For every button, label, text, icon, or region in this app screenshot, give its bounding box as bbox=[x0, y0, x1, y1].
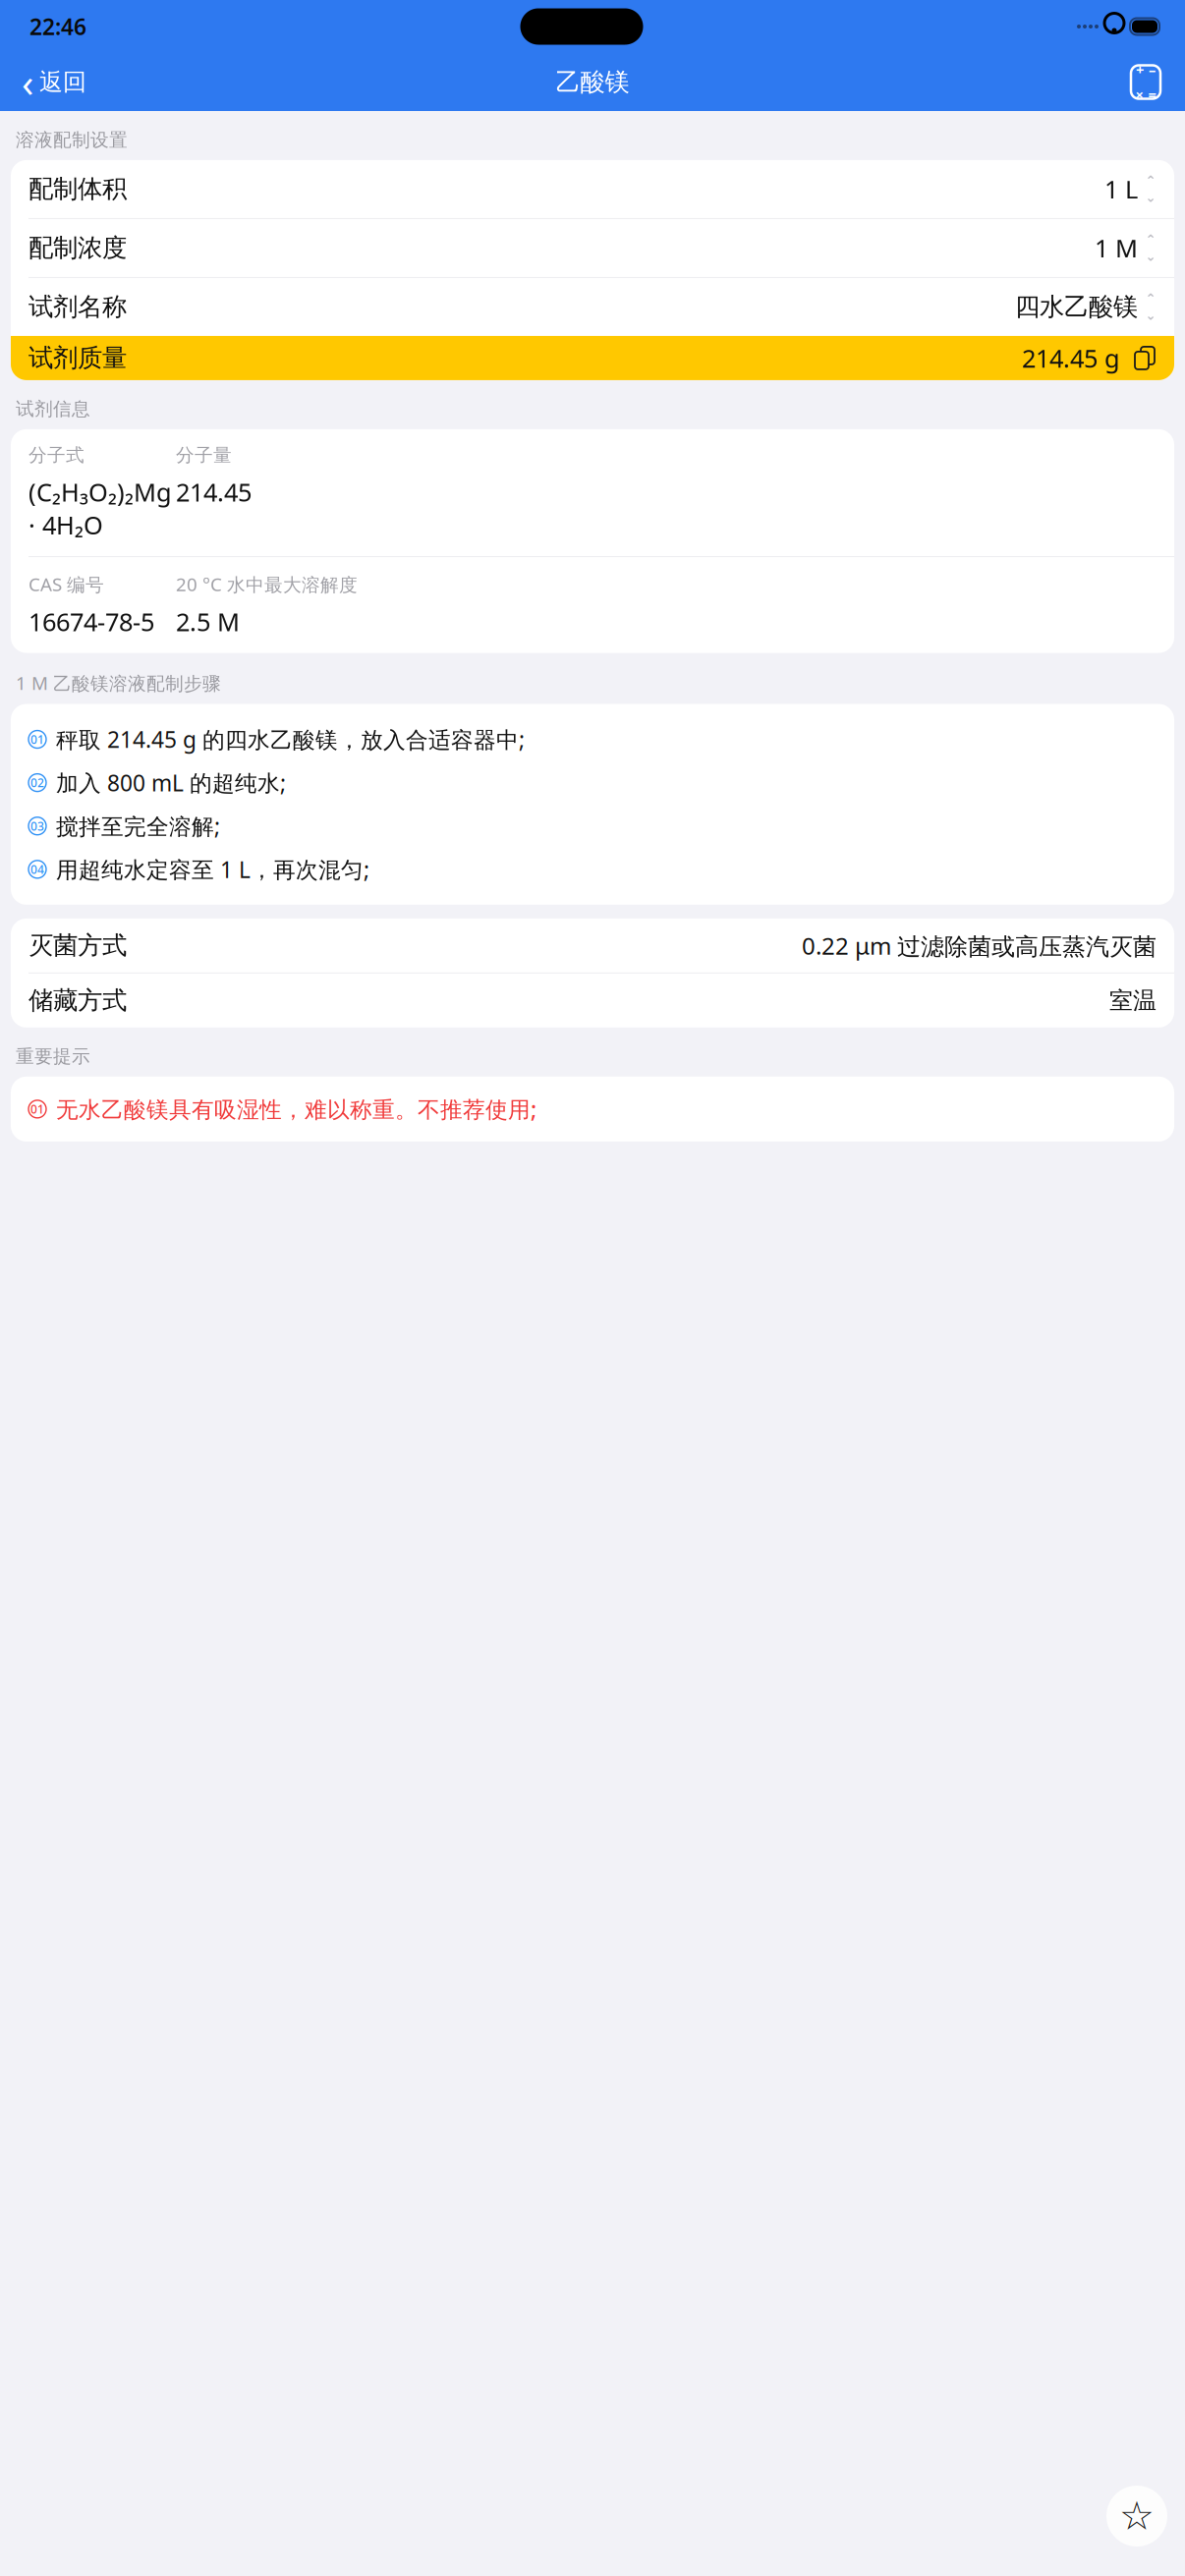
staticText: 重要提示 bbox=[16, 1045, 90, 1068]
staticText: 分子量 bbox=[176, 444, 232, 466]
staticText: ⌃ bbox=[1145, 291, 1156, 306]
button[interactable]: 配制体积 bbox=[11, 160, 1174, 218]
staticText: 2.5 M bbox=[176, 605, 240, 638]
staticText: 搅拌至完全溶解; bbox=[56, 811, 220, 841]
button[interactable]: 试剂质量 bbox=[11, 336, 1174, 380]
staticText: 返回 bbox=[39, 68, 86, 97]
staticText: 配制体积 bbox=[28, 174, 127, 204]
staticText: 01 bbox=[30, 732, 44, 747]
staticText: 试剂名称 bbox=[28, 292, 127, 322]
staticText: × bbox=[1135, 85, 1143, 104]
staticText: (C₂H₃O₂)₂Mg · 4H₂O bbox=[28, 475, 172, 541]
staticText: 1 M bbox=[1095, 231, 1138, 264]
staticText: 1 L bbox=[1104, 173, 1138, 206]
button[interactable]: ‹ bbox=[14, 50, 94, 114]
staticText: + bbox=[1136, 60, 1144, 79]
staticText: 乙酸镁 bbox=[556, 67, 629, 97]
staticText: 溶液配制设置 bbox=[16, 129, 128, 151]
staticText: ⌃ bbox=[1145, 173, 1156, 188]
staticText: ⌃ bbox=[1145, 232, 1156, 247]
staticText: 214.45 bbox=[176, 475, 252, 508]
staticText: 储藏方式 bbox=[28, 985, 127, 1016]
staticText: – bbox=[1149, 60, 1156, 79]
staticText: 22:46 bbox=[29, 12, 86, 41]
staticText: ⌄ bbox=[1145, 249, 1156, 264]
staticText: 16674-78-5 bbox=[28, 605, 154, 638]
staticText: = bbox=[1148, 85, 1156, 104]
staticText: 02 bbox=[30, 775, 44, 790]
staticText: 室温 bbox=[1109, 986, 1157, 1015]
staticText: 无水乙酸镁具有吸湿性，难以称重。不推荐使用; bbox=[56, 1094, 536, 1124]
staticText: 03 bbox=[30, 818, 44, 834]
staticText: 0.22 μm 过滤除菌或高压蒸汽灭菌 bbox=[802, 930, 1157, 961]
staticText: 试剂信息 bbox=[16, 398, 90, 420]
staticText: 214.45 g bbox=[1022, 342, 1120, 375]
staticText: 用超纯水定容至 1 L，再次混匀; bbox=[56, 855, 369, 884]
staticText: ☆ bbox=[1119, 2494, 1155, 2538]
staticText: 加入 800 mL 的超纯水; bbox=[56, 768, 286, 797]
staticText: 秤取 214.45 g 的四水乙酸镁，放入合适容器中; bbox=[56, 725, 525, 754]
staticText: 灭菌方式 bbox=[28, 930, 127, 961]
staticText: ⌄ bbox=[1145, 190, 1156, 205]
staticText: 四水乙酸镁 bbox=[1015, 292, 1138, 322]
staticText: 01 bbox=[30, 1101, 44, 1117]
button[interactable]: 计算器 bbox=[1124, 58, 1167, 106]
staticText: ‹ bbox=[22, 56, 33, 108]
staticText: 04 bbox=[30, 862, 44, 877]
staticText: 分子式 bbox=[28, 444, 85, 466]
staticText: CAS 编号 bbox=[28, 572, 104, 596]
button[interactable]: 试剂名称 bbox=[11, 278, 1174, 336]
staticText: 试剂质量 bbox=[28, 343, 127, 373]
staticText: ⌄ bbox=[1145, 308, 1156, 323]
button[interactable]: 配制浓度 bbox=[11, 219, 1174, 277]
staticText: 20 °C 水中最大溶解度 bbox=[176, 572, 358, 596]
staticText: 1 M 乙酸镁溶液配制步骤 bbox=[16, 671, 221, 695]
staticText: 配制浓度 bbox=[28, 233, 127, 263]
button[interactable]: 收藏 bbox=[1106, 2486, 1167, 2547]
